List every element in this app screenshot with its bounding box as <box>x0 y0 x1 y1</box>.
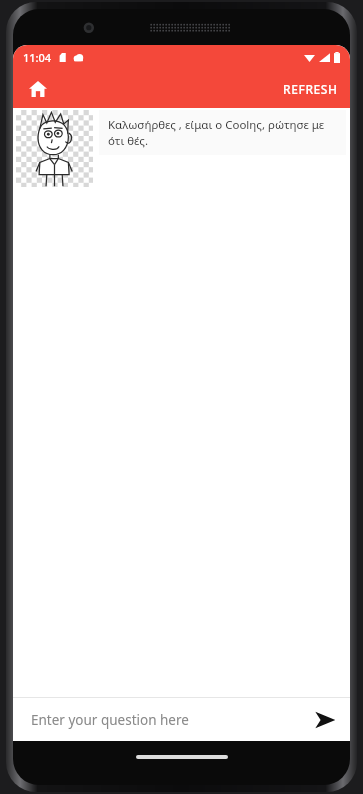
staticText: Καλωσήρθες , είμαι ο Coolης, ρώτησε με ό… <box>108 117 337 148</box>
staticText: 11:04 <box>23 50 52 65</box>
staticText: Enter your question here <box>31 711 189 729</box>
button[interactable]: Καλωσήρθες , είμαι ο Coolης, ρώτησε με ό… <box>13 110 350 187</box>
button[interactable]: Enter your question here <box>13 698 308 741</box>
button[interactable]: REFRESH <box>271 73 350 105</box>
staticText: REFRESH <box>283 81 338 97</box>
button[interactable]: Send <box>308 703 342 737</box>
button[interactable]: Home <box>19 70 57 108</box>
